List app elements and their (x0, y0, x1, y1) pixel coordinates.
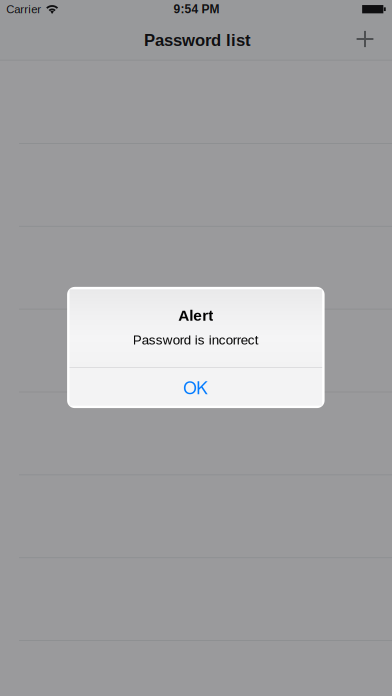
button[interactable]: OK (69, 368, 322, 406)
staticText: Alert (178, 307, 213, 324)
button[interactable]: Add password (343, 18, 387, 60)
staticText: OK (183, 374, 208, 399)
staticText: Password list (144, 31, 251, 49)
staticText: 9:54 PM (173, 2, 219, 16)
staticText: Password is incorrect (133, 332, 259, 347)
staticText: Carrier (6, 3, 41, 16)
